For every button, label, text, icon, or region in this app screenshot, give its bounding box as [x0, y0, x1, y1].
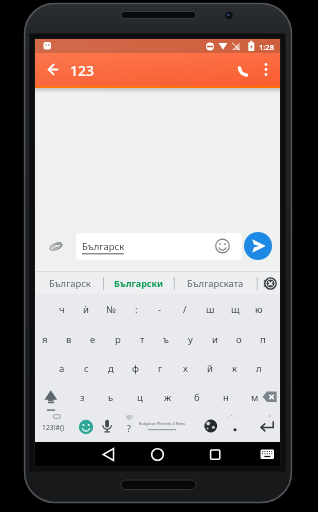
staticText: х — [183, 362, 188, 375]
staticText: н — [223, 391, 229, 404]
staticText: : — [135, 303, 138, 316]
staticText: д — [108, 362, 114, 375]
staticText: Българск — [82, 240, 125, 253]
staticText: з — [80, 391, 85, 404]
staticText: ъ — [163, 333, 169, 346]
staticText: № — [106, 303, 116, 316]
staticText: Български — [114, 277, 164, 289]
staticText: ц — [137, 391, 143, 404]
staticText: 123!#() — [42, 423, 64, 432]
staticText: - — [158, 303, 162, 316]
staticText: м — [251, 391, 259, 404]
staticText: е — [90, 333, 96, 346]
staticText: ч — [59, 303, 65, 316]
staticText: а — [59, 362, 65, 375]
staticText: и — [212, 333, 218, 346]
staticText: с — [84, 362, 89, 375]
staticText: й — [207, 362, 213, 375]
staticText: !@/ — [126, 414, 133, 420]
staticText: ф — [132, 362, 140, 375]
staticText: ш — [206, 303, 215, 316]
staticText: б — [194, 391, 200, 404]
staticText: 123 — [70, 61, 95, 80]
staticText: я — [42, 333, 48, 346]
staticText: п — [260, 333, 266, 346]
staticText: / — [183, 303, 187, 316]
staticText: о — [236, 333, 242, 346]
staticText: г — [158, 362, 163, 375]
staticText: ж — [164, 391, 172, 404]
staticText: Българската — [187, 277, 244, 290]
staticText: л — [256, 362, 262, 375]
staticText: щ — [231, 303, 240, 316]
staticText: у — [188, 333, 193, 346]
staticText: 1:28 — [259, 42, 274, 52]
staticText: р — [115, 333, 121, 346]
staticText: ь — [108, 391, 114, 404]
staticText: т — [140, 333, 145, 346]
staticText: ѝ — [83, 303, 89, 316]
staticText: Б — [263, 277, 269, 289]
staticText: Българск — [49, 277, 91, 290]
staticText: к — [232, 362, 238, 375]
staticText: Bulgarian Phonetic 4 Rows — [139, 421, 186, 426]
staticText: в — [66, 333, 72, 346]
staticText: ? — [127, 422, 131, 434]
staticText: ю — [255, 303, 263, 316]
